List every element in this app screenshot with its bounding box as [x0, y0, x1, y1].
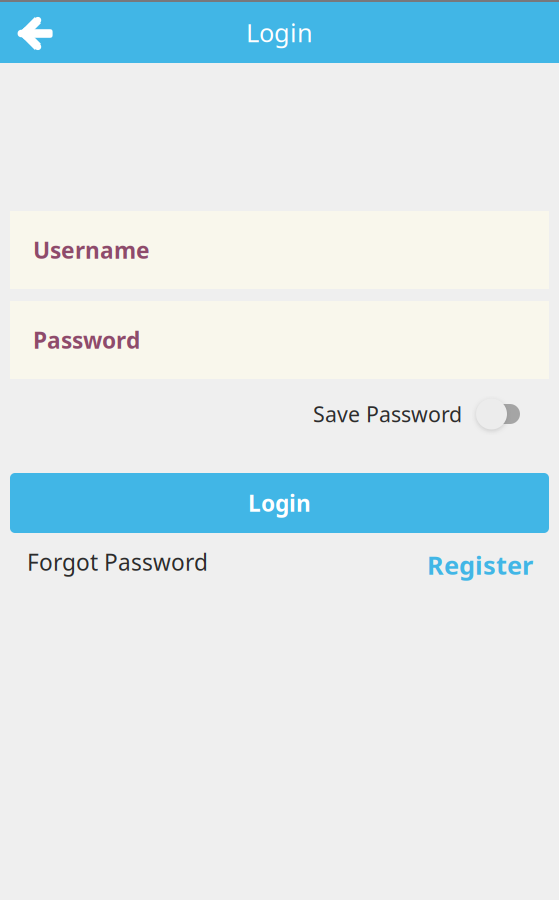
button[interactable]: Login — [10, 473, 549, 533]
staticText: Register — [427, 548, 533, 582]
staticText: Password — [33, 325, 140, 355]
button[interactable]: Username — [10, 211, 549, 289]
button[interactable]: Save Password — [313, 398, 520, 429]
staticText: Save Password — [313, 400, 462, 428]
button[interactable]: Forgot Password — [27, 546, 208, 576]
staticText: Login — [248, 488, 311, 518]
button[interactable]: Back — [0, 2, 70, 63]
button[interactable]: Register — [427, 544, 533, 578]
staticText: Login — [246, 16, 313, 49]
staticText: Forgot Password — [27, 547, 208, 577]
staticText: Username — [33, 235, 150, 265]
button[interactable]: Password — [10, 301, 549, 379]
